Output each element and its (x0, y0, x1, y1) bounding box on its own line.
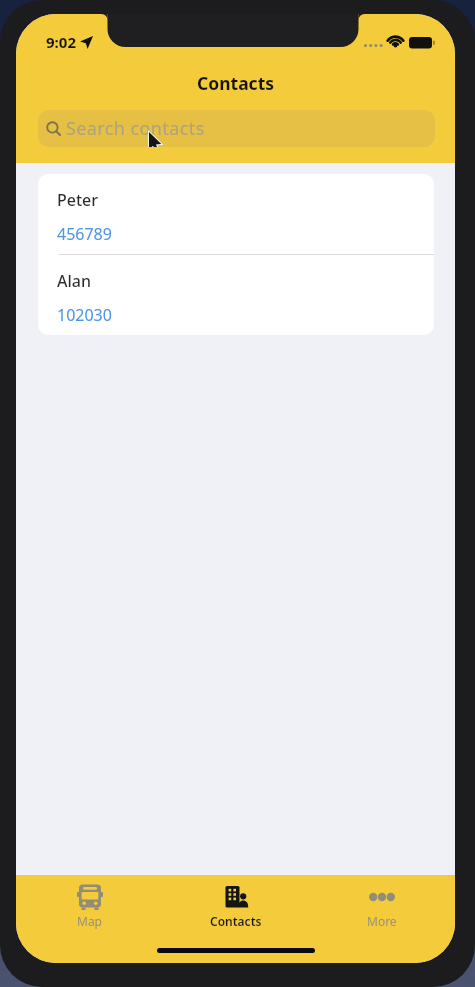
staticText: Contacts (197, 71, 275, 95)
button[interactable]: More (309, 875, 455, 929)
button[interactable]: Peter (38, 174, 434, 254)
staticText: Search contacts (66, 116, 205, 141)
button[interactable]: Contacts (163, 875, 309, 929)
staticText: Peter (57, 189, 99, 211)
staticText: 102030 (57, 304, 112, 326)
staticText: More (367, 913, 397, 929)
staticText: 456789 (57, 223, 112, 245)
button[interactable]: Alan (38, 255, 434, 335)
staticText: 9:02 (46, 32, 76, 52)
staticText: Alan (57, 270, 91, 292)
staticText: Map (77, 913, 102, 929)
button[interactable]: Search contacts (38, 110, 435, 147)
button[interactable]: Map (16, 875, 163, 929)
staticText: Contacts (210, 913, 262, 929)
